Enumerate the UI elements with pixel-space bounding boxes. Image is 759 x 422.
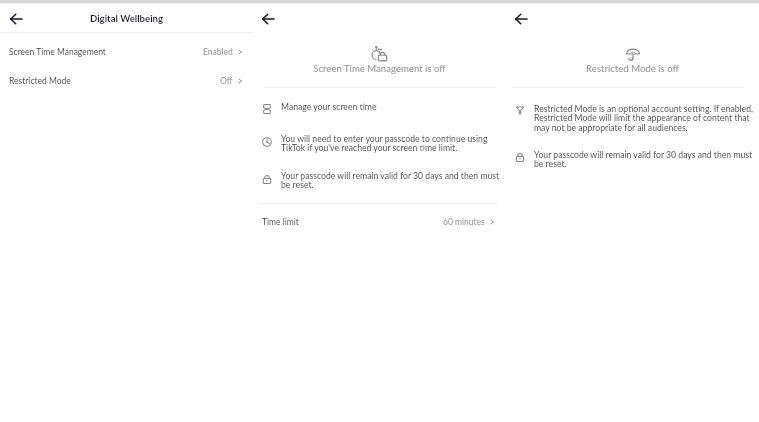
staticText: Enabled bbox=[203, 47, 233, 57]
staticText: 60 minutes bbox=[443, 217, 485, 227]
staticText: Restricted Mode bbox=[9, 76, 71, 86]
staticText: Time limit bbox=[262, 217, 299, 227]
button[interactable]: Screen Time Management bbox=[0, 37, 253, 66]
staticText: Restricted Mode is an optional account s… bbox=[534, 103, 757, 133]
button[interactable]: Back bbox=[510, 8, 532, 30]
button[interactable]: Back bbox=[257, 8, 279, 30]
staticText: Manage your screen time bbox=[281, 101, 504, 111]
staticText: Your passcode will remain valid for 30 d… bbox=[281, 170, 504, 190]
button[interactable]: Time limit bbox=[253, 207, 506, 236]
staticText: Your passcode will remain valid for 30 d… bbox=[534, 149, 757, 169]
staticText: Screen Time Management is off bbox=[253, 63, 506, 75]
button[interactable]: Back bbox=[5, 8, 27, 30]
button[interactable]: Restricted Mode bbox=[0, 66, 253, 95]
staticText: Digital Wellbeing bbox=[0, 13, 253, 25]
staticText: Screen Time Management bbox=[9, 47, 106, 57]
staticText: Restricted Mode is off bbox=[506, 63, 759, 75]
staticText: You will need to enter your passcode to … bbox=[281, 133, 504, 153]
staticText: Off bbox=[220, 76, 233, 86]
